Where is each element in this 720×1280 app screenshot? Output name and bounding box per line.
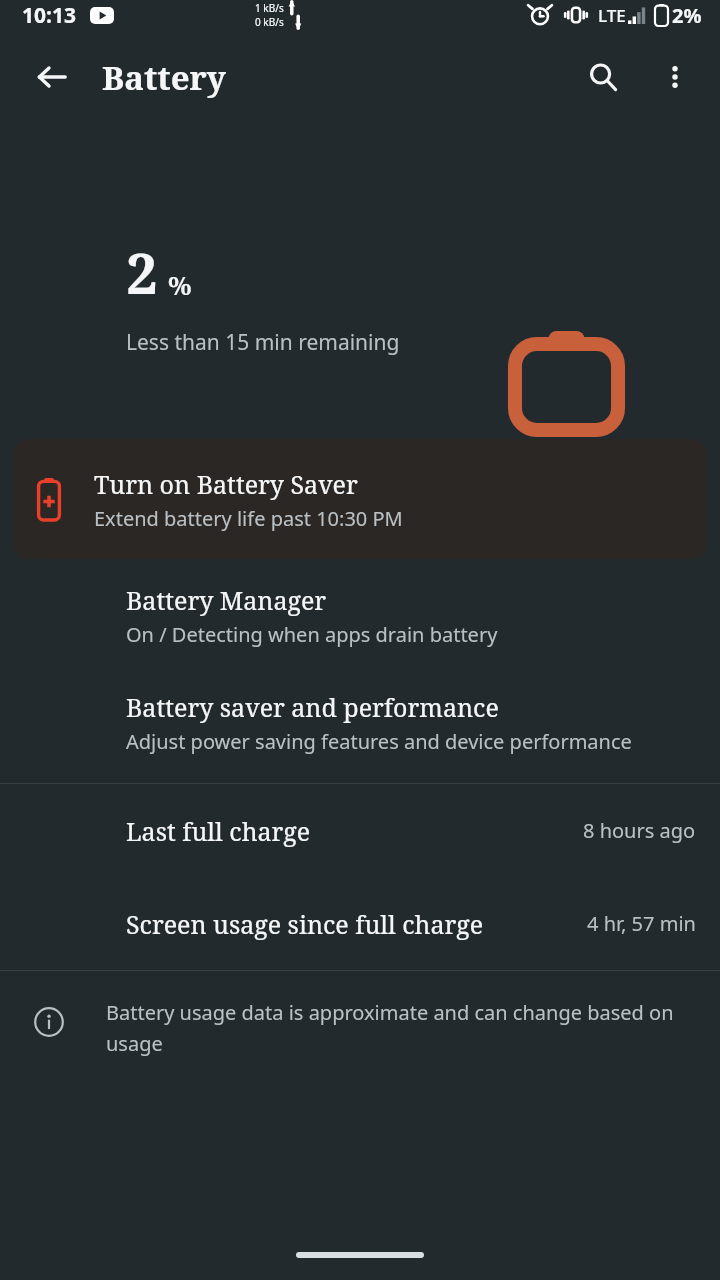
- staticText: Less than 15 min remaining: [126, 328, 400, 357]
- staticText: LTE: [598, 4, 626, 27]
- staticText: %: [168, 267, 192, 302]
- button[interactable]: Search: [578, 52, 628, 102]
- button[interactable]: Battery saver and performance: [0, 680, 720, 765]
- staticText: 4 hr, 57 min: [587, 910, 696, 937]
- staticText: 1 kB/s: [255, 1, 284, 15]
- staticText: 2: [126, 234, 158, 310]
- button[interactable]: More options: [652, 54, 698, 100]
- staticText: Extend battery life past 10:30 PM: [94, 505, 403, 532]
- staticText: 8 hours ago: [583, 817, 696, 844]
- staticText: 2%: [672, 2, 702, 29]
- staticText: Battery: [102, 55, 226, 100]
- staticText: Battery Manager: [126, 583, 327, 617]
- button[interactable]: Back: [28, 53, 76, 101]
- button[interactable]: Last full charge: [0, 784, 720, 877]
- staticText: Battery saver and performance: [126, 690, 499, 724]
- staticText: Turn on Battery Saver: [94, 467, 358, 501]
- button[interactable]: Screen usage since full charge: [0, 877, 720, 970]
- staticText: 10:13: [22, 1, 76, 30]
- button[interactable]: Battery Manager: [0, 573, 720, 658]
- staticText: Adjust power saving features and device …: [126, 728, 632, 755]
- staticText: Last full charge: [126, 814, 311, 848]
- staticText: Screen usage since full charge: [126, 907, 484, 941]
- staticText: 0 kB/s: [255, 15, 284, 29]
- button[interactable]: Turn on Battery Saver: [14, 439, 706, 559]
- staticText: On / Detecting when apps drain battery: [126, 621, 498, 648]
- staticText: Battery usage data is approximate and ca…: [106, 999, 680, 1056]
